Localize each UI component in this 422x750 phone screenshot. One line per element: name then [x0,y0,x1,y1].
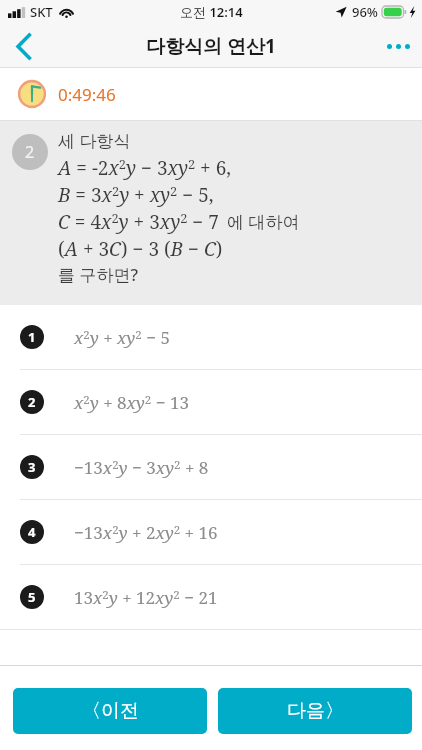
staticText: A = -2x2y − 3xy2 + 6, [58,155,232,181]
staticText: B = 3x2y + xy2 − 5, [58,182,214,208]
button[interactable]: 2 [0,370,422,434]
staticText: C = 4x2y + 3xy2 − 7 [58,209,219,235]
staticText: 오전 12:14 [180,3,243,21]
staticText: 세 다항식 [58,129,131,152]
staticText: 2 [25,141,35,163]
button[interactable]: 3 [0,435,422,499]
staticText: 5 [28,588,36,606]
button[interactable]: 4 [0,500,422,564]
staticText: 0:49:46 [58,83,116,106]
button[interactable]: More options [374,24,422,68]
button[interactable]: 1 [0,305,422,369]
button[interactable]: Back [0,24,46,68]
staticText: 1 [28,328,36,346]
staticText: SKT [30,3,53,21]
staticText: −13x2y + 2xy2 + 16 [74,521,218,544]
staticText: −13x2y − 3xy2 + 8 [74,456,209,479]
button[interactable]: 〈이전 [13,688,207,734]
staticText: x2y + xy2 − 5 [74,326,170,349]
staticText: 에 대하여 [227,210,300,233]
staticText: 4 [28,523,36,541]
staticText: (A + 3C) − 3 (B − C) [58,236,223,262]
staticText: 13x2y + 12xy2 − 21 [74,586,218,609]
staticText: 다음〉 [287,699,344,723]
button[interactable]: 다음〉 [218,688,412,734]
staticText: x2y + 8xy2 − 13 [74,391,189,414]
staticText: 다항식의 연산1 [146,33,276,59]
staticText: 96% [352,3,378,21]
staticText: 3 [28,458,36,476]
button[interactable]: 5 [0,565,422,629]
staticText: 2 [28,393,36,411]
staticText: 를 구하면? [58,263,139,286]
staticText: 〈이전 [82,699,139,723]
